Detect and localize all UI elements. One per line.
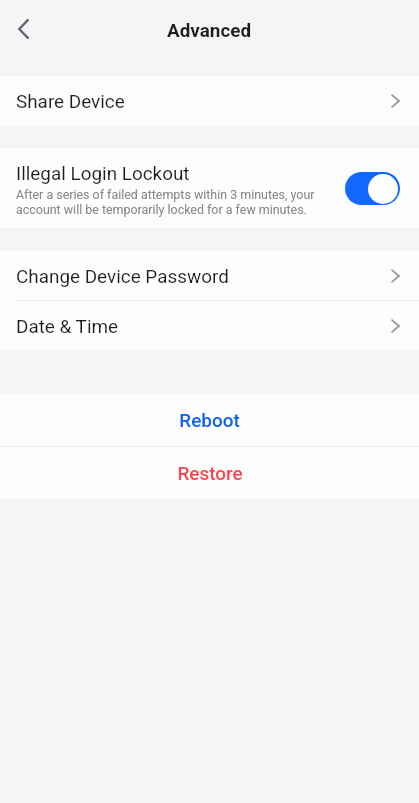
staticText: Illegal Login Lockout bbox=[16, 162, 190, 184]
staticText: After a series of failed attempts within… bbox=[16, 187, 318, 217]
button[interactable]: Illegal Login Lockout bbox=[0, 148, 419, 228]
button[interactable]: Reboot bbox=[0, 394, 419, 446]
button[interactable]: Illegal Login Lockout bbox=[345, 172, 400, 205]
staticText: Restore bbox=[177, 462, 243, 484]
staticText: Advanced bbox=[167, 19, 252, 41]
button[interactable]: Restore bbox=[0, 447, 419, 499]
button[interactable]: Change Device Password bbox=[0, 251, 419, 300]
button[interactable]: Back bbox=[1, 0, 47, 56]
staticText: Date & Time bbox=[16, 315, 119, 337]
staticText: Reboot bbox=[179, 409, 240, 431]
button[interactable]: Date & Time bbox=[0, 301, 419, 350]
staticText: Change Device Password bbox=[16, 265, 229, 287]
staticText: Share Device bbox=[16, 90, 125, 112]
button[interactable]: Share Device bbox=[0, 76, 419, 126]
